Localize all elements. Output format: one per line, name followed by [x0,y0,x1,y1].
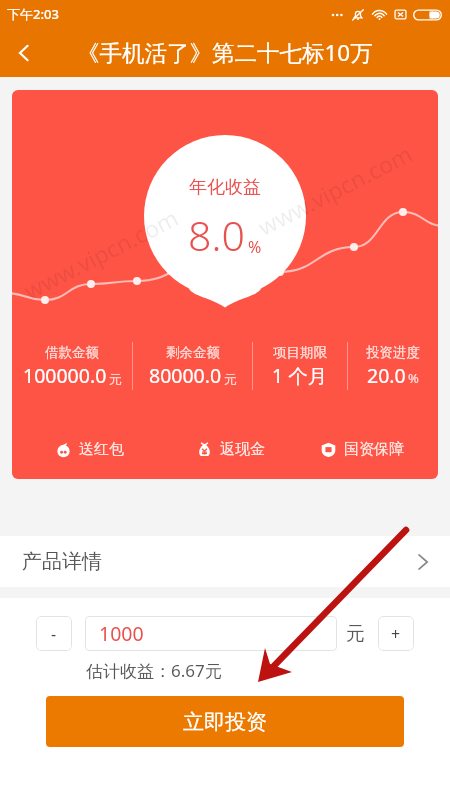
staticText: 80000.0 [149,362,222,389]
staticText: 1 个月 [272,362,328,389]
staticText: 剩余金额 [166,344,220,361]
staticText: 1000 [99,620,144,647]
staticText: 立即投资 [183,709,267,735]
staticText: 元 [109,371,122,387]
button[interactable]: 国资保障 [320,440,404,459]
staticText: 100000.0 [23,362,107,389]
staticText: % [408,369,419,387]
staticText: www.vipcn.com [18,201,184,306]
staticText: 投资进度 [366,344,420,361]
staticText: 送红包 [79,440,124,459]
staticText: www.vipcn.com [252,137,418,242]
staticText: 估计收益：6.67元 [86,659,450,682]
staticText: 返现金 [220,440,265,459]
staticText: 《手机活了》第二十七标10万 [77,37,373,68]
staticText: 下午2:03 [7,5,59,23]
button[interactable]: Back [0,29,48,77]
button[interactable]: 1000 [85,616,337,651]
staticText: 元 [224,371,237,387]
staticText: 8.0 [188,207,245,263]
staticText: + [391,623,401,645]
button[interactable]: 送红包 [55,440,124,459]
button[interactable]: 返现金 [196,440,265,459]
staticText: 20.0 [367,362,406,389]
staticText: 项目期限 [273,344,327,361]
button[interactable]: Decrease [36,616,72,651]
staticText: 年化收益 [189,176,261,199]
button[interactable]: 产品详情 [0,536,450,587]
staticText: % [248,236,262,258]
button[interactable]: 立即投资 [46,696,404,747]
staticText: 产品详情 [22,549,102,574]
button[interactable]: Increase [378,616,414,651]
staticText: 元 [346,622,365,645]
staticText: 借款金额 [45,344,99,361]
staticText: 国资保障 [344,440,404,459]
staticText: - [51,623,57,645]
